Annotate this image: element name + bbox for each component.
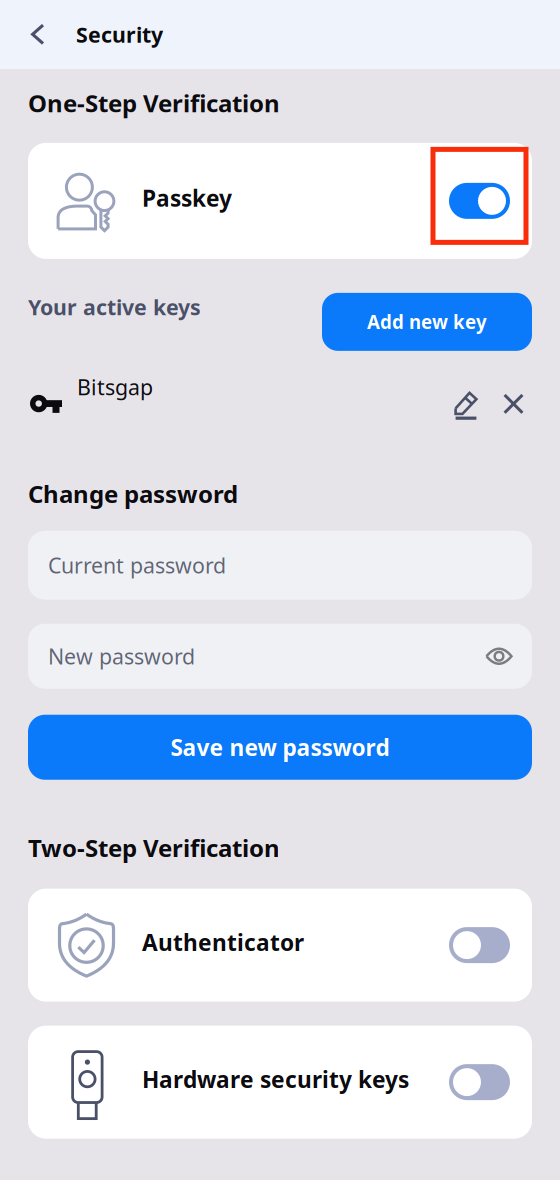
staticText: Save new password <box>170 732 389 762</box>
button[interactable]: Passkey <box>28 143 532 259</box>
button[interactable]: Save new password <box>28 715 532 780</box>
staticText: Two-Step Verification <box>28 832 280 864</box>
staticText: Security <box>76 20 163 49</box>
button[interactable]: Hardware security keys <box>28 1026 532 1139</box>
button[interactable]: Back <box>0 0 63 69</box>
staticText: Bitsgap <box>77 373 153 401</box>
button[interactable]: Delete key <box>495 385 532 422</box>
staticText: Authenticator <box>142 927 304 957</box>
staticText: Add new key <box>367 309 487 334</box>
staticText: New password <box>48 642 195 670</box>
staticText: Your active keys <box>28 293 201 321</box>
button[interactable]: Add new key <box>322 293 532 351</box>
staticText: Hardware security keys <box>142 1064 409 1094</box>
staticText: One-Step Verification <box>28 87 280 119</box>
staticText: Change password <box>28 478 238 510</box>
button[interactable]: Edit key <box>448 385 484 426</box>
button[interactable]: Show password <box>479 640 519 673</box>
button[interactable]: Authenticator <box>28 889 532 1002</box>
staticText: Passkey <box>142 183 232 213</box>
staticText: Current password <box>48 551 226 579</box>
